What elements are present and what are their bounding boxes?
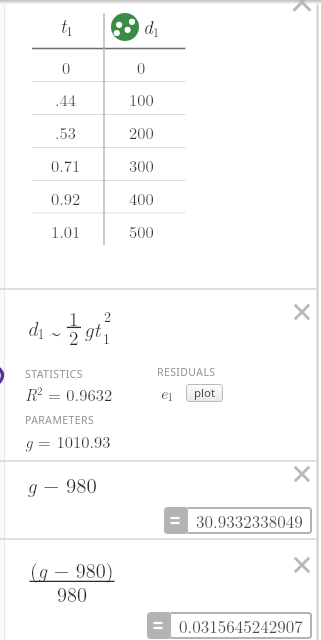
staticText: 1 (69, 305, 79, 332)
staticText: gt (84, 314, 101, 343)
staticText: PARAMETERS (25, 413, 95, 427)
button[interactable]: .44 (6, 76, 126, 120)
staticText: g = 1010.93 (25, 429, 111, 452)
staticText: .44 (55, 87, 77, 110)
button[interactable]: 1.01 (6, 208, 126, 252)
button[interactable]: 0 (81, 44, 201, 88)
staticText: 980 (57, 579, 87, 607)
button[interactable]: 0.71 (6, 142, 126, 186)
staticText: 100 (129, 87, 154, 110)
staticText: 30.9332338049 (196, 509, 303, 533)
button[interactable] (291, 554, 313, 576)
button[interactable]: 0 (6, 44, 126, 88)
button[interactable]: 500 (81, 208, 201, 252)
staticText: 2 (104, 306, 111, 326)
staticText: 0.0315645242907 (179, 614, 303, 638)
button[interactable]: 30.9332338049 (186, 507, 312, 534)
staticText: 0.92 (51, 186, 81, 209)
staticText: plot (194, 385, 216, 401)
staticText: g − 980 (27, 470, 97, 499)
button[interactable]: 300 (81, 142, 201, 186)
staticText: 1 (103, 328, 110, 348)
staticText: e1 (160, 380, 174, 404)
staticText: R2 = 0.9632 (25, 382, 113, 405)
button[interactable]: 400 (81, 175, 201, 219)
staticText: 2 (69, 324, 79, 351)
staticText: STATISTICS (25, 367, 83, 381)
button[interactable]: plot (186, 384, 223, 402)
staticText: 1.01 (51, 219, 81, 242)
staticText: 200 (129, 120, 154, 143)
staticText: 0 (137, 55, 146, 78)
staticText: 300 (129, 153, 154, 176)
button[interactable]: 0.0315645242907 (169, 612, 312, 639)
button[interactable]: 200 (81, 109, 201, 153)
button[interactable]: .53 (6, 109, 126, 153)
staticText: 500 (129, 219, 154, 242)
staticText: t1 (60, 12, 73, 40)
staticText: d1 (27, 313, 45, 343)
staticText: RESIDUALS (157, 365, 216, 379)
staticText: ~ (49, 317, 61, 346)
staticText: (g − 980) (30, 555, 114, 583)
button[interactable]: 0.92 (6, 175, 126, 219)
button[interactable] (291, 301, 313, 323)
staticText: 400 (129, 186, 154, 209)
staticText: 0.71 (51, 153, 81, 176)
button[interactable] (291, 463, 313, 485)
staticText: .53 (55, 120, 77, 143)
staticText: 0 (62, 55, 71, 78)
button[interactable]: 100 (81, 76, 201, 120)
staticText: d1 (143, 13, 160, 41)
